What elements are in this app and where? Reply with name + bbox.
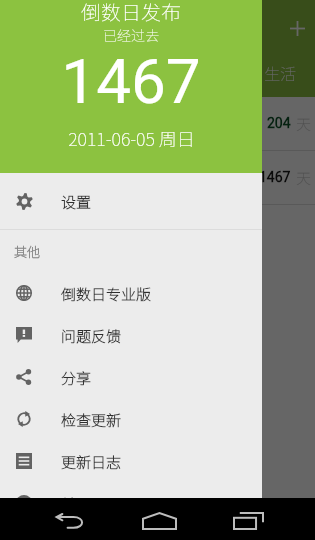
button[interactable]: 生活 xyxy=(262,58,315,92)
staticText: 2011-06-05 周日 xyxy=(68,125,195,151)
staticText: 分享 xyxy=(61,367,92,389)
button[interactable]: Recent apps xyxy=(204,502,292,540)
staticText: 其他 xyxy=(14,242,41,261)
staticText: 事件名称 xyxy=(16,113,77,135)
button[interactable]: 关于 xyxy=(0,482,262,524)
button[interactable]: 检查更新 xyxy=(0,398,262,440)
staticText: 倒数日发布 xyxy=(81,0,181,26)
staticText: 天 xyxy=(296,167,312,189)
staticText: 设置 xyxy=(61,191,92,213)
staticText: 1467 xyxy=(61,45,201,118)
staticText: 关于 xyxy=(61,493,92,515)
staticText: 天 xyxy=(296,113,312,135)
button[interactable]: Add xyxy=(281,12,313,44)
button[interactable]: 天 xyxy=(0,151,315,205)
staticText: 生活 xyxy=(264,61,297,84)
button[interactable]: 更新日志 xyxy=(0,440,262,482)
staticText: 更新日志 xyxy=(61,451,122,473)
staticText: 倒数日专业版 xyxy=(61,283,152,305)
button[interactable]: 天 xyxy=(0,97,315,151)
button[interactable]: 全部 xyxy=(14,58,74,92)
staticText: 纪念日 xyxy=(140,61,189,84)
staticText: 已经过去 xyxy=(103,25,159,45)
button[interactable]: 问题反馈 xyxy=(0,314,262,356)
button[interactable]: Home xyxy=(115,502,203,540)
button[interactable]: Back xyxy=(26,502,114,540)
staticText: 问题反馈 xyxy=(61,325,122,347)
button[interactable]: 设置 xyxy=(0,173,262,229)
staticText: 1467 xyxy=(259,169,291,185)
button[interactable]: 分享 xyxy=(0,356,262,398)
staticText: 204 xyxy=(267,115,291,131)
button[interactable]: 倒数日专业版 xyxy=(0,272,262,314)
button[interactable]: 纪念日 xyxy=(138,58,198,92)
staticText: 事件名称 xyxy=(16,167,77,189)
staticText: 检查更新 xyxy=(61,409,122,431)
